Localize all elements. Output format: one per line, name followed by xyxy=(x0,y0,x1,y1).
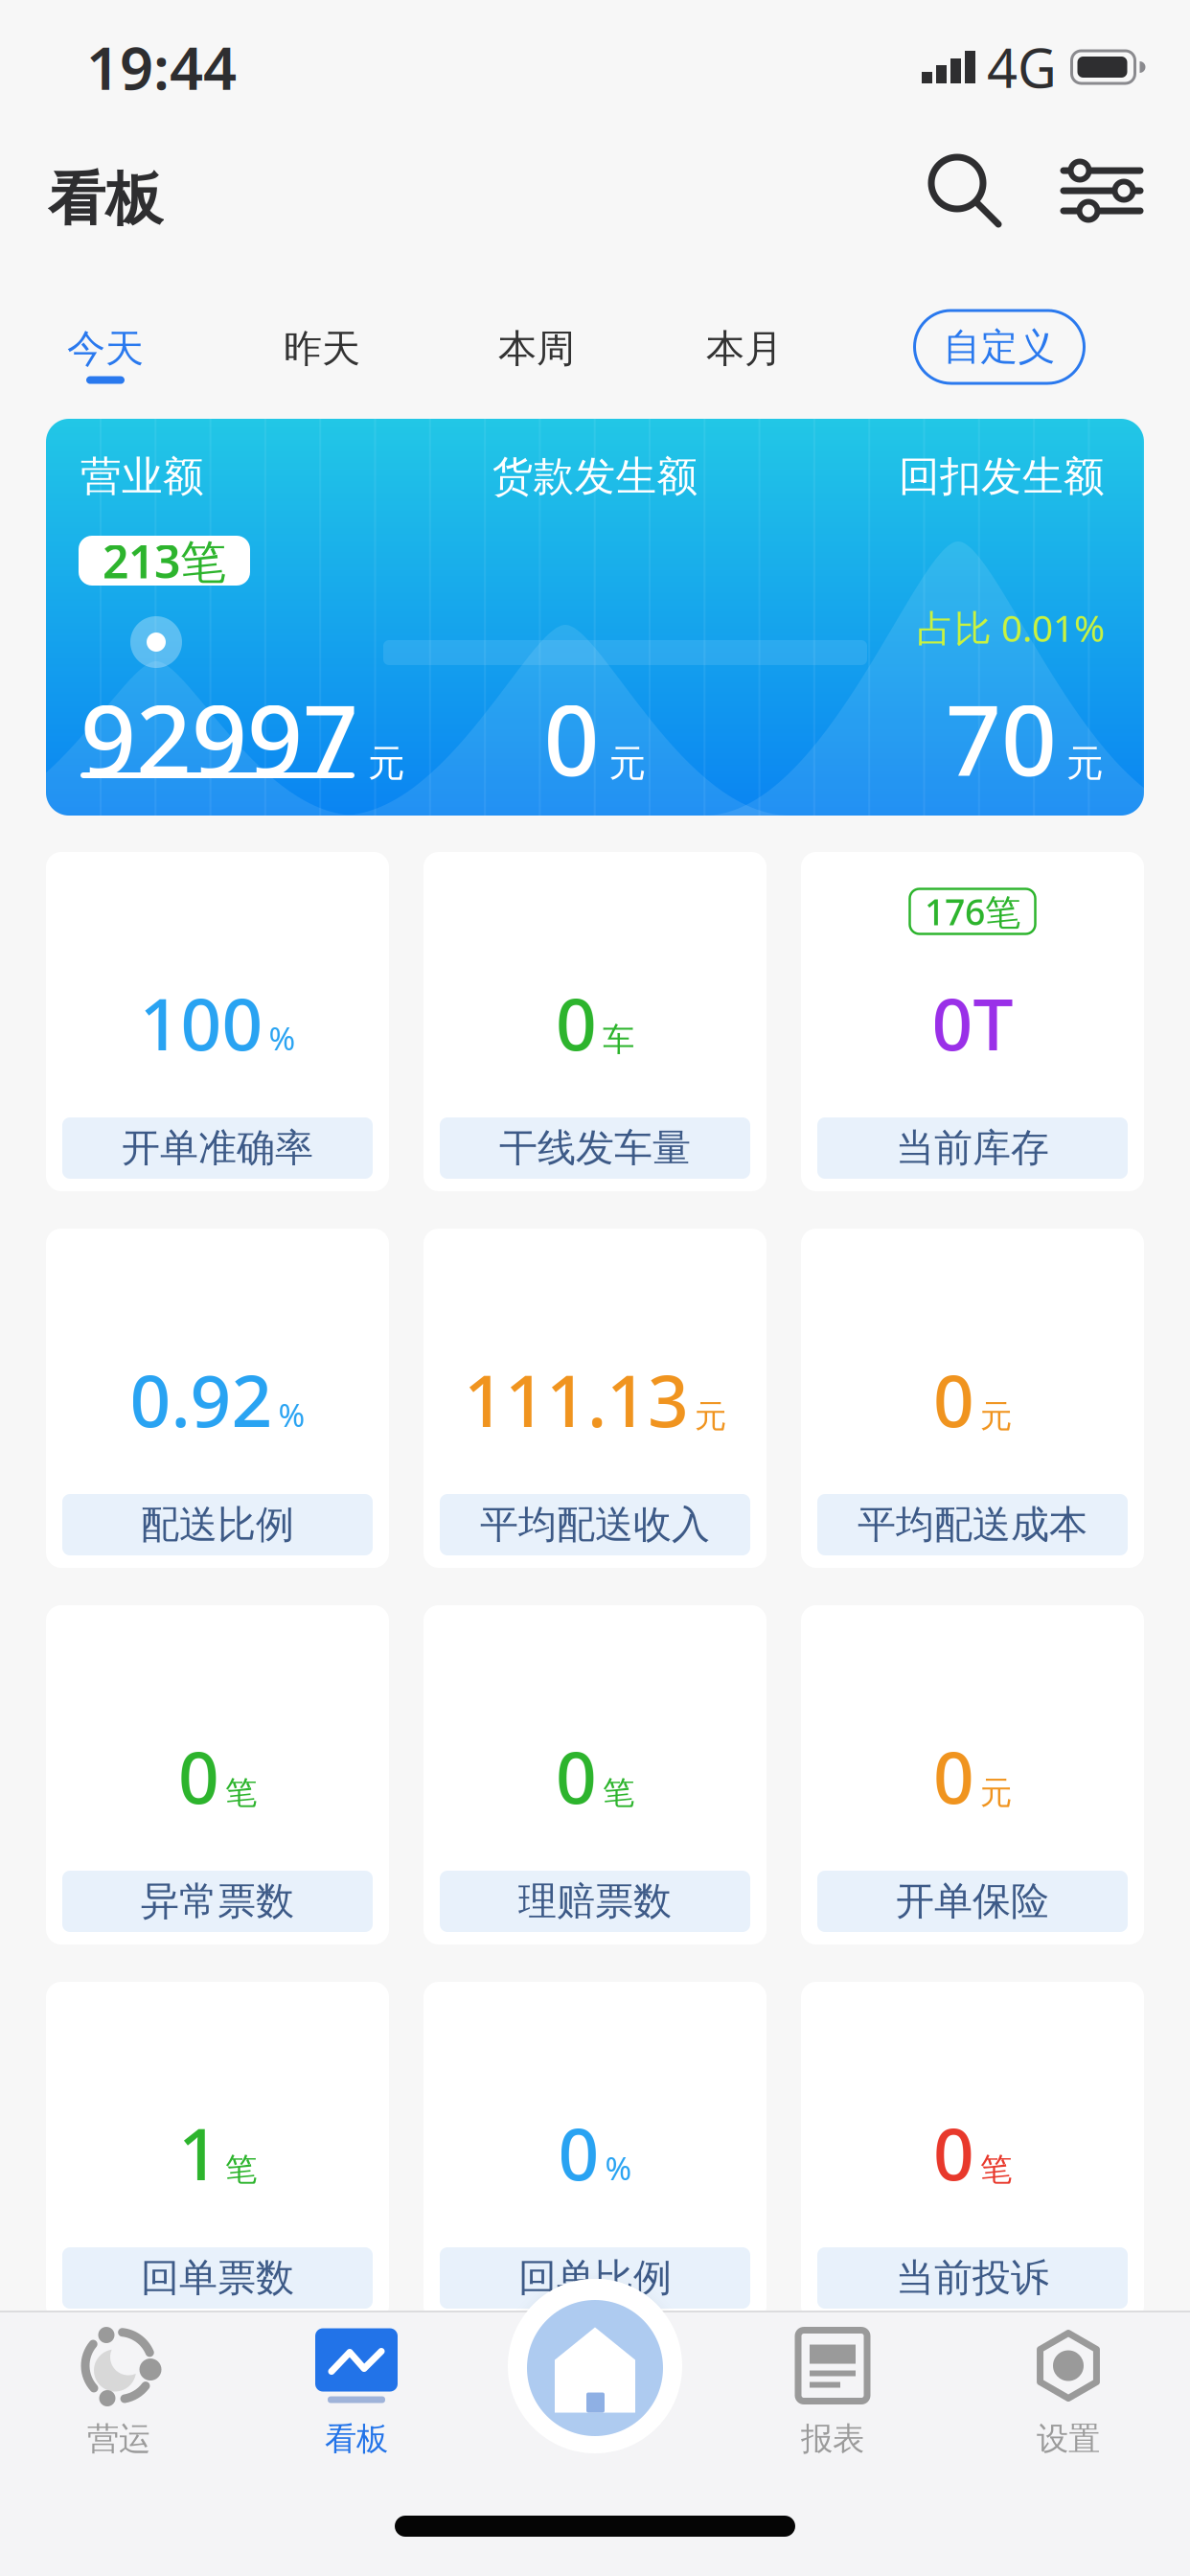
staticText: 开单保险 xyxy=(896,1878,1049,1925)
staticText: 看板 xyxy=(48,164,163,235)
button[interactable]: 0 xyxy=(801,1229,1144,1568)
button[interactable]: 看板 xyxy=(315,2325,398,2459)
button[interactable]: 昨天 xyxy=(284,325,360,384)
staticText: 笔 xyxy=(225,2150,257,2189)
staticText: 元 xyxy=(1066,741,1104,786)
staticText: 70 xyxy=(946,674,1057,803)
staticText: % xyxy=(278,1393,305,1436)
staticText: 0 xyxy=(178,1728,219,1823)
staticText: 4G xyxy=(987,31,1057,103)
staticText: 开单准确率 xyxy=(122,1125,313,1172)
staticText: 元 xyxy=(368,741,405,786)
staticText: 干线发车量 xyxy=(499,1125,691,1172)
button[interactable]: 0 xyxy=(423,1982,767,2321)
button[interactable]: 自定义 xyxy=(915,310,1084,383)
staticText: % xyxy=(605,2147,632,2189)
staticText: 元 xyxy=(980,1773,1012,1812)
staticText: 回扣发生额 xyxy=(899,451,1105,502)
staticText: 当前投诉 xyxy=(896,2254,1049,2301)
staticText: 92997 xyxy=(80,674,358,803)
button[interactable]: 111.13 xyxy=(423,1229,767,1568)
button[interactable]: 0 xyxy=(423,852,767,1191)
staticText: 本月 xyxy=(706,325,783,372)
button[interactable]: 1 xyxy=(46,1982,389,2321)
staticText: 100 xyxy=(139,975,263,1070)
staticText: 笔 xyxy=(603,1773,634,1812)
staticText: 营运 xyxy=(87,2419,150,2459)
staticText: 111.13 xyxy=(464,1352,689,1447)
staticText: 货款发生额 xyxy=(492,451,698,502)
staticText: 本周 xyxy=(498,325,575,372)
button[interactable]: 0 xyxy=(801,1605,1144,1944)
staticText: 理赔票数 xyxy=(518,1878,672,1925)
staticText: 0 xyxy=(556,1728,597,1823)
staticText: 0 xyxy=(558,2105,599,2200)
button[interactable]: 营运 xyxy=(80,2325,157,2459)
staticText: 今天 xyxy=(67,325,144,372)
staticText: 笔 xyxy=(225,1773,257,1812)
staticText: 当前库存 xyxy=(896,1125,1049,1172)
staticText: 19:44 xyxy=(86,28,237,106)
staticText: 看板 xyxy=(325,2419,388,2459)
staticText: 元 xyxy=(695,1397,726,1436)
button[interactable]: 176笔 xyxy=(801,852,1144,1191)
button[interactable]: 100 xyxy=(46,852,389,1191)
button[interactable]: 本周 xyxy=(498,325,575,384)
staticText: 自定义 xyxy=(943,324,1055,370)
staticText: 213笔 xyxy=(103,530,226,591)
staticText: 报表 xyxy=(801,2419,864,2459)
button[interactable]: 本月 xyxy=(706,325,783,384)
staticText: 0 xyxy=(933,1352,974,1447)
staticText: 营业额 xyxy=(80,451,204,502)
staticText: 0T xyxy=(932,975,1013,1070)
staticText: 回单比例 xyxy=(518,2254,672,2301)
staticText: 笔 xyxy=(980,2150,1012,2189)
staticText: 0 xyxy=(544,674,599,803)
button[interactable]: 设置 xyxy=(1032,2325,1105,2459)
staticText: 昨天 xyxy=(284,325,360,372)
staticText: 元 xyxy=(980,1397,1012,1436)
button[interactable]: 0.92 xyxy=(46,1229,389,1568)
button[interactable]: 0 xyxy=(423,1605,767,1944)
staticText: 平均配送收入 xyxy=(480,1501,710,1548)
staticText: 设置 xyxy=(1037,2419,1100,2459)
staticText: 回单票数 xyxy=(141,2254,294,2301)
staticText: 车 xyxy=(603,1020,634,1059)
staticText: 0.92 xyxy=(130,1352,273,1447)
staticText: 占比 0.01% xyxy=(917,603,1105,652)
staticText: 1 xyxy=(178,2105,219,2200)
staticText: 异常票数 xyxy=(141,1878,294,1925)
staticText: 平均配送成本 xyxy=(858,1501,1087,1548)
staticText: 0 xyxy=(556,975,597,1070)
button[interactable]: 筛选 xyxy=(1054,151,1150,230)
button[interactable]: 今天 xyxy=(67,325,144,384)
staticText: 0 xyxy=(933,2105,974,2200)
staticText: % xyxy=(269,1017,296,1059)
staticText: 配送比例 xyxy=(141,1501,294,1548)
button[interactable]: 首页 xyxy=(527,2300,663,2436)
staticText: 0 xyxy=(933,1728,974,1823)
staticText: 176笔 xyxy=(925,888,1020,935)
button[interactable]: 0 xyxy=(801,1982,1144,2321)
staticText: 元 xyxy=(609,741,646,786)
button[interactable]: 搜索 xyxy=(918,144,1012,238)
button[interactable]: 0 xyxy=(46,1605,389,1944)
button[interactable]: 报表 xyxy=(798,2325,867,2459)
